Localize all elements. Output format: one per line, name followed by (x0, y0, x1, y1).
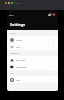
staticText: Major Listing (16, 59, 26, 61)
staticText: PREFERENCES (10, 53, 20, 55)
button[interactable]: Major Listing (7, 56, 58, 63)
staticText: Settings (10, 22, 26, 27)
button[interactable]: Send Feedback (7, 63, 58, 70)
staticText: INFO (10, 73, 14, 75)
button[interactable]: About (7, 76, 58, 83)
staticText: localhost (13, 2, 22, 5)
staticText: Send Feedback (16, 66, 27, 68)
staticText: Login (16, 46, 20, 48)
staticText: About (16, 79, 21, 81)
button[interactable]: Account (7, 36, 58, 43)
staticText: Account (16, 39, 22, 41)
button[interactable]: Login (7, 43, 58, 50)
staticText: 9:41 (9, 13, 14, 16)
staticText: ACCOUNT (10, 33, 17, 35)
